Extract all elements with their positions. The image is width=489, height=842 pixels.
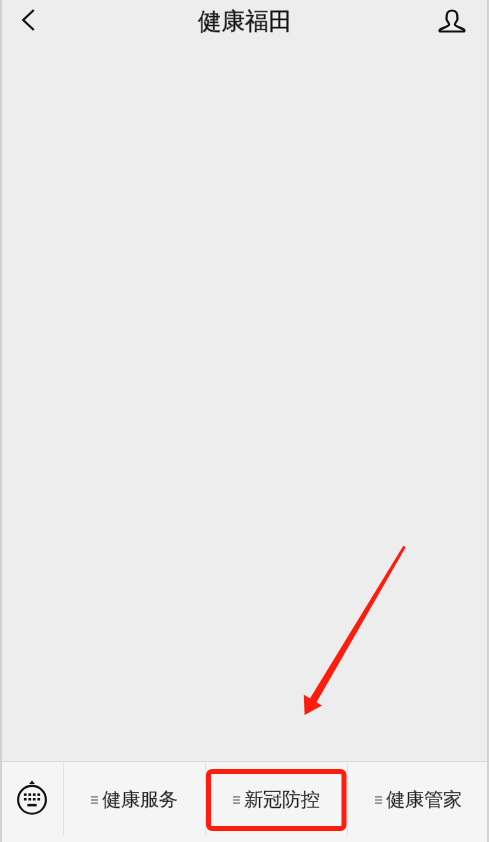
- staticText: 健康福田: [198, 6, 292, 36]
- staticText: 健康管家: [386, 788, 462, 812]
- staticText: 新冠防控: [244, 788, 320, 812]
- staticText: 新冠防控: [244, 788, 320, 812]
- staticText: 健康服务: [102, 788, 178, 812]
- staticText: 健康福田: [198, 6, 292, 36]
- button[interactable]: Keyboard: [0, 762, 63, 842]
- staticText: 健康管家: [386, 788, 462, 812]
- button[interactable]: Back: [7, 0, 51, 44]
- button[interactable]: 健康管家: [348, 762, 489, 842]
- button[interactable]: 新冠防控: [206, 762, 347, 842]
- button[interactable]: 健康服务: [64, 762, 205, 842]
- button[interactable]: Profile: [432, 2, 472, 42]
- staticText: 健康服务: [102, 788, 178, 812]
